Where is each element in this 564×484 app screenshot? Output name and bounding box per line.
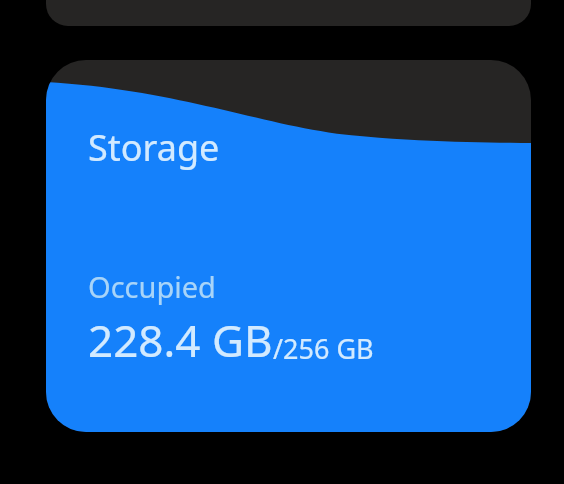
staticText: 228.4 GB [88,310,273,370]
staticText: Storage [88,123,220,172]
staticText: /256 GB [273,330,374,367]
staticText: Occupied [88,267,216,306]
button[interactable] [46,0,531,26]
button[interactable]: Storage [46,60,531,432]
